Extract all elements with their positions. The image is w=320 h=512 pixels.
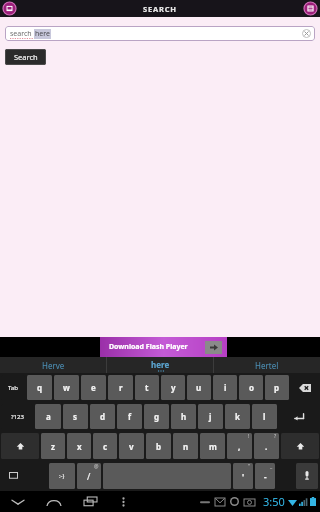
button[interactable]: y [161,375,185,400]
staticText: r [119,382,123,393]
staticText: f [128,411,132,422]
staticText: l [263,411,266,422]
button[interactable]: More options [108,491,138,512]
button[interactable]: Shift [281,433,319,459]
button[interactable]: here [107,357,213,373]
button[interactable]: search [5,26,315,41]
staticText: 3:50 [263,494,285,509]
other: Open download [205,341,222,354]
button[interactable]: Tab [1,375,25,400]
staticText: ?123 [11,413,24,421]
button[interactable]: Hertel [214,357,320,373]
staticText: :-) [59,472,65,480]
button[interactable]: v [119,433,144,459]
staticText: ? [274,433,277,440]
staticText: SEARCH [143,4,177,14]
button[interactable]: :-) [49,463,75,489]
button[interactable]: z [41,433,65,459]
button[interactable]: Clear search [301,28,312,39]
staticText: . [265,441,268,452]
button[interactable]: Search [5,49,46,65]
staticText: q [37,382,43,393]
button[interactable]: f [117,404,142,429]
button[interactable]: Switch keyboard [0,461,26,491]
button[interactable]: d [90,404,115,429]
button[interactable]: ' [233,463,253,489]
staticText: " [248,463,251,470]
button[interactable]: e [81,375,106,400]
button[interactable]: t [135,375,159,400]
staticText: x [77,441,82,452]
staticText: _ [270,463,273,470]
staticText: here [35,29,50,39]
staticText: y [171,382,176,393]
button[interactable]: - [255,463,275,489]
staticText: c [103,441,108,452]
button[interactable]: Enter [278,402,320,431]
staticText: search [10,29,32,39]
button[interactable]: c [93,433,117,459]
staticText: i [224,382,227,393]
staticText: / [87,470,91,482]
button[interactable]: o [239,375,263,400]
button[interactable]: Recent apps [72,491,108,512]
staticText: o [249,382,254,393]
staticText: m [209,441,217,452]
button[interactable]: s [63,404,88,429]
button[interactable]: l [252,404,277,429]
button[interactable]: / [77,463,101,489]
button[interactable]: Shift [1,433,39,459]
staticText: n [183,441,189,452]
staticText: Hertel [255,360,279,371]
button[interactable]: k [225,404,250,429]
staticText: b [156,441,162,452]
staticText: Tab [8,384,18,392]
button[interactable]: , [227,433,252,459]
button[interactable]: Backspace [290,373,320,402]
staticText: v [129,441,134,452]
button[interactable]: u [187,375,211,400]
staticText: h [181,411,187,422]
button[interactable]: w [54,375,79,400]
button[interactable]: Menu [303,1,318,16]
button[interactable]: g [144,404,169,429]
staticText: @ [94,463,99,470]
button[interactable]: b [146,433,171,459]
button[interactable]: Download Flash Player [100,337,227,357]
staticText: ! [248,433,250,440]
staticText: z [51,441,55,452]
staticText: d [100,411,106,422]
staticText: - [264,471,267,482]
button[interactable]: Herve [0,357,106,373]
staticText: k [235,411,240,422]
button[interactable]: h [171,404,196,429]
button[interactable]: x [67,433,91,459]
button[interactable]: i [213,375,237,400]
button[interactable]: q [27,375,52,400]
button[interactable]: . [254,433,279,459]
staticText: Herve [42,360,65,371]
button[interactable]: m [200,433,225,459]
button[interactable]: Voice input [296,463,318,489]
button[interactable]: p [265,375,289,400]
button[interactable]: Back [0,491,36,512]
staticText: a [46,411,51,422]
staticText: e [91,382,96,393]
button[interactable]: j [198,404,223,429]
staticText: g [154,411,160,422]
staticText: ' [242,471,245,482]
staticText: w [63,382,70,393]
button[interactable]: r [108,375,133,400]
staticText: s [73,411,78,422]
staticText: here [151,359,170,370]
staticText: Search [14,52,38,62]
button[interactable]: ?123 [1,404,33,429]
staticText: j [209,411,212,422]
button[interactable]: a [35,404,61,429]
button[interactable]: Home [36,491,72,512]
staticText: u [196,382,202,393]
button[interactable]: App icon [2,1,17,16]
button[interactable]: n [173,433,198,459]
staticText: Download Flash Player [109,342,205,352]
